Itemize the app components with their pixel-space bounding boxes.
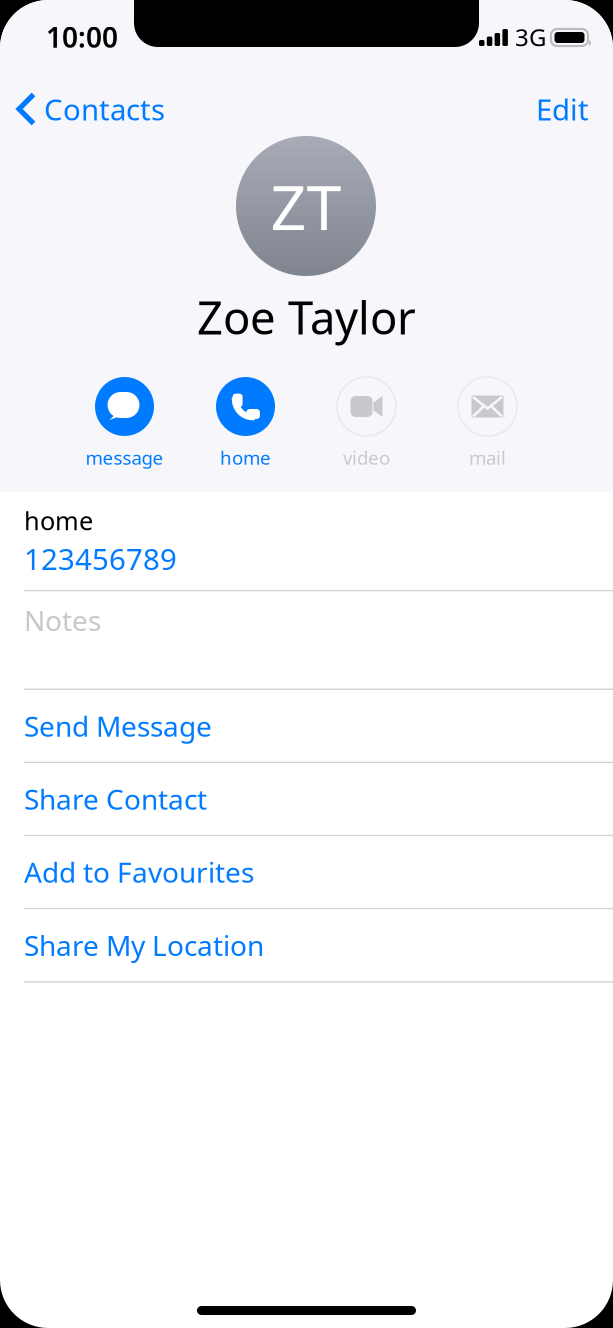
staticText: Share Contact xyxy=(24,780,207,817)
button[interactable]: Add to Favourites xyxy=(0,836,613,909)
button[interactable]: Share My Location xyxy=(0,909,613,982)
staticText: Add to Favourites xyxy=(24,853,254,891)
staticText: 123456789 xyxy=(24,539,177,578)
button[interactable]: video xyxy=(306,377,427,470)
button[interactable]: home xyxy=(0,492,613,591)
staticText: ZT xyxy=(270,164,341,248)
button[interactable]: Edit xyxy=(536,79,613,138)
button[interactable]: Contacts xyxy=(0,79,165,138)
button[interactable]: mail xyxy=(427,377,548,470)
staticText: 3G xyxy=(515,21,546,53)
button[interactable]: Share Contact xyxy=(0,763,613,836)
button[interactable]: Send Message xyxy=(0,690,613,763)
staticText: Contacts xyxy=(44,89,165,128)
button[interactable]: message xyxy=(64,377,185,470)
staticText: 10:00 xyxy=(46,18,118,56)
staticText: Share My Location xyxy=(24,926,264,964)
staticText: message xyxy=(85,445,163,470)
button[interactable]: home xyxy=(185,377,306,470)
staticText: Send Message xyxy=(24,707,212,744)
staticText: home xyxy=(220,445,271,470)
staticText: Edit xyxy=(536,89,589,128)
staticText: video xyxy=(343,445,390,470)
staticText: Notes xyxy=(24,601,101,639)
staticText: home xyxy=(24,504,93,537)
staticText: mail xyxy=(469,445,506,470)
staticText: Zoe Taylor xyxy=(197,287,416,347)
